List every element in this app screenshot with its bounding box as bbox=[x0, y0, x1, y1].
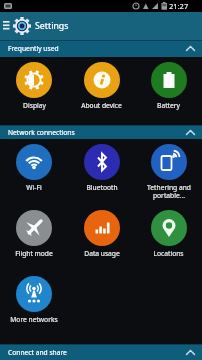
button[interactable]: Locations bbox=[135, 205, 202, 271]
staticText: Network connections bbox=[8, 128, 75, 137]
staticText: Tethering and portable... bbox=[147, 183, 191, 200]
staticText: Wi-Fi bbox=[26, 183, 42, 192]
staticText: Settings bbox=[35, 20, 69, 32]
button[interactable]: Frequently used bbox=[0, 40, 202, 57]
staticText: More networks bbox=[10, 315, 58, 324]
staticText: About device bbox=[81, 101, 122, 110]
button[interactable]: Flight mode bbox=[0, 205, 68, 271]
button[interactable]: Battery bbox=[135, 57, 202, 123]
staticText: Display bbox=[23, 101, 46, 110]
staticText: Battery bbox=[157, 101, 180, 110]
button[interactable]: Network connections bbox=[0, 125, 202, 139]
button[interactable]: Display bbox=[0, 57, 68, 123]
staticText: Frequently used bbox=[8, 44, 59, 53]
staticText: Locations bbox=[153, 249, 184, 258]
button[interactable]: Bluetooth bbox=[68, 139, 135, 205]
staticText: Flight mode bbox=[15, 249, 53, 258]
button[interactable]: Tethering and portable... bbox=[135, 139, 202, 205]
button[interactable]: About device bbox=[68, 57, 135, 123]
staticText: Bluetooth bbox=[86, 183, 118, 192]
button[interactable]: Settings bbox=[0, 12, 202, 40]
staticText: Data usage bbox=[84, 249, 120, 258]
staticText: 21:27 bbox=[169, 1, 189, 11]
button[interactable]: Connect and share bbox=[0, 344, 202, 360]
button[interactable]: More networks bbox=[0, 271, 68, 337]
button[interactable]: Data usage bbox=[68, 205, 135, 271]
staticText: Connect and share bbox=[8, 348, 67, 357]
button[interactable]: Wi-Fi bbox=[0, 139, 68, 205]
